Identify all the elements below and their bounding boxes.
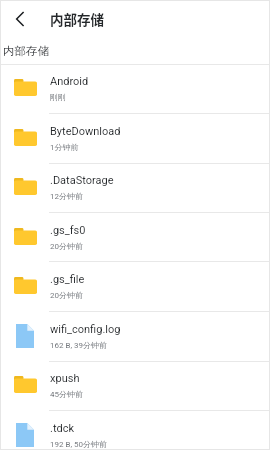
- staticText: 20分钟前: [50, 290, 83, 300]
- staticText: 内部存储: [50, 9, 104, 29]
- staticText: wifi_config.log: [50, 323, 121, 336]
- button[interactable]: .tdck: [0, 411, 270, 450]
- button[interactable]: .gs_fs0: [0, 213, 270, 261]
- button[interactable]: Back: [0, 0, 38, 38]
- button[interactable]: .gs_file: [0, 262, 270, 311]
- button[interactable]: .DataStorage: [0, 163, 270, 212]
- staticText: 1分钟前: [50, 142, 79, 152]
- staticText: 刚刚: [50, 92, 66, 102]
- staticText: 20分钟前: [50, 241, 83, 251]
- staticText: .DataStorage: [50, 174, 114, 187]
- staticText: ByteDownload: [50, 125, 121, 138]
- button[interactable]: Android: [0, 64, 270, 113]
- button[interactable]: wifi_config.log: [0, 312, 270, 361]
- staticText: .gs_file: [50, 273, 85, 286]
- staticText: .tdck: [50, 422, 75, 435]
- staticText: Android: [50, 75, 89, 88]
- staticText: .gs_fs0: [50, 224, 86, 237]
- button[interactable]: ByteDownload: [0, 114, 270, 163]
- staticText: 162 B, 39分钟前: [50, 340, 108, 350]
- button[interactable]: xpush: [0, 361, 270, 410]
- staticText: 192 B, 50分钟前: [50, 439, 108, 449]
- staticText: 内部存储: [3, 44, 49, 58]
- button[interactable]: 内部存储: [0, 38, 270, 64]
- staticText: 12分钟前: [50, 191, 83, 201]
- staticText: xpush: [50, 372, 80, 385]
- staticText: 45分钟前: [50, 389, 83, 399]
